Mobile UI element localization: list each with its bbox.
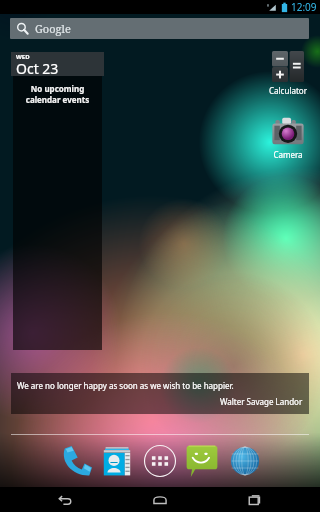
button[interactable]: Phone: [55, 441, 95, 481]
staticText: Walter Savage Landor: [220, 396, 303, 407]
button[interactable]: Messaging: [182, 441, 222, 481]
button[interactable]: All apps: [140, 441, 180, 481]
staticText: 12:09: [291, 0, 317, 14]
staticText: Google: [35, 21, 71, 36]
button[interactable]: Calculator: [266, 51, 310, 96]
staticText: Camera: [273, 149, 303, 160]
staticText: We are no longer happy as soon as we wis…: [17, 380, 234, 391]
staticText: WED: [16, 53, 30, 61]
button[interactable]: Camera: [266, 117, 310, 160]
staticText: No upcoming calendar events: [15, 83, 100, 105]
button[interactable]: We are no longer happy as soon as we wis…: [11, 373, 309, 414]
staticText: Calculator: [269, 85, 307, 96]
button[interactable]: No upcoming calendar events: [13, 76, 102, 350]
staticText: Oct 23: [16, 59, 59, 75]
button[interactable]: Browser: [225, 441, 265, 481]
button[interactable]: Google search: [10, 18, 309, 39]
button[interactable]: Recents: [225, 487, 285, 512]
button[interactable]: Home: [130, 487, 190, 512]
button[interactable]: WED: [11, 52, 104, 76]
button[interactable]: Back: [35, 487, 95, 512]
button[interactable]: Contacts: [97, 441, 137, 481]
